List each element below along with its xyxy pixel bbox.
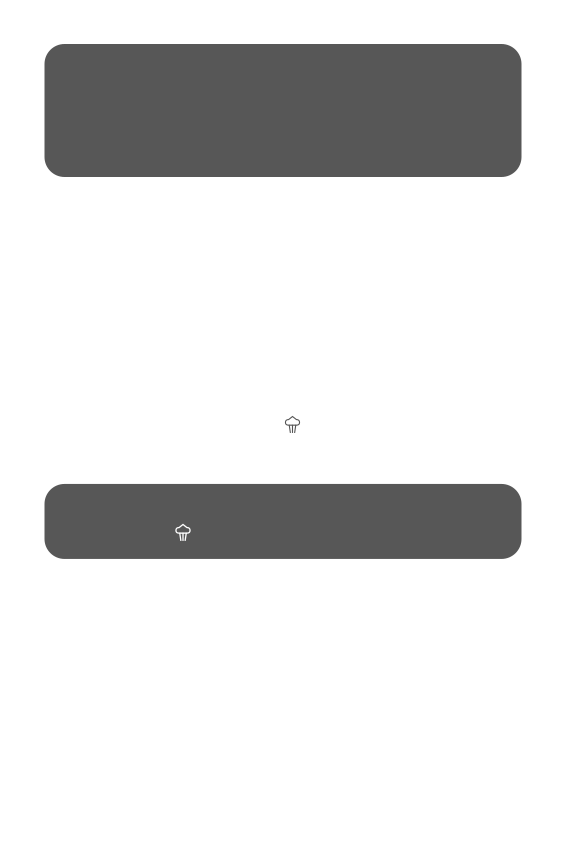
button[interactable]: Featured recipe [44, 44, 521, 177]
button[interactable]: Start cooking [44, 484, 521, 559]
